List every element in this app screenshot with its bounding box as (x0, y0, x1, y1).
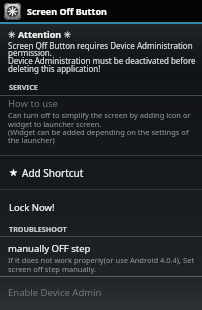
button[interactable]: Lock Now! (0, 190, 202, 224)
staticText: ★ (9, 167, 18, 179)
staticText: Enable Device Admin (8, 286, 102, 299)
staticText: Screen Off Button (27, 5, 107, 17)
staticText: ✳ Attention ✳ (8, 28, 72, 40)
staticText: manually OFF step (8, 242, 91, 255)
staticText: Screen Off Button requires Device Admini… (8, 40, 196, 75)
button[interactable]: How to use (0, 96, 202, 155)
staticText: Lock Now! (9, 201, 55, 214)
staticText: Add Shortcut (22, 166, 84, 180)
button[interactable]: ★ (0, 156, 202, 189)
staticText: How to use (8, 97, 58, 110)
button[interactable]: Screen Off Button (0, 0, 202, 22)
button[interactable]: Enable Device Admin (0, 277, 202, 307)
button[interactable]: manually OFF step (0, 237, 202, 276)
staticText: If it does not work properly(or use Andr… (8, 255, 195, 274)
staticText: TROUBLESHOOT (9, 224, 67, 234)
staticText: SERVICE (9, 82, 38, 92)
staticText: Can turn off to simplify the screen by a… (8, 110, 191, 145)
